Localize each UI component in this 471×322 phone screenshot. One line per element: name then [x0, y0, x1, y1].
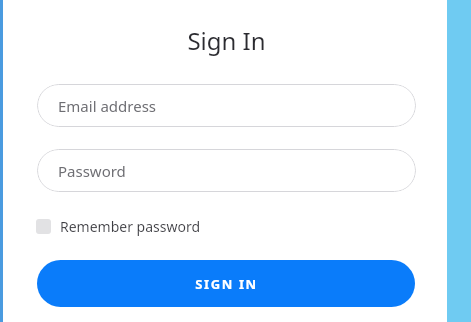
staticText: SIGN IN [195, 275, 258, 293]
button[interactable]: SIGN IN [37, 260, 415, 307]
button[interactable]: Remember password [36, 217, 207, 236]
staticText: Sign In [37, 24, 416, 57]
button[interactable]: Email address [37, 84, 416, 127]
staticText: Remember password [60, 217, 201, 236]
staticText: Email address [58, 96, 157, 116]
button[interactable]: Password [37, 149, 416, 192]
staticText: Password [58, 161, 126, 181]
